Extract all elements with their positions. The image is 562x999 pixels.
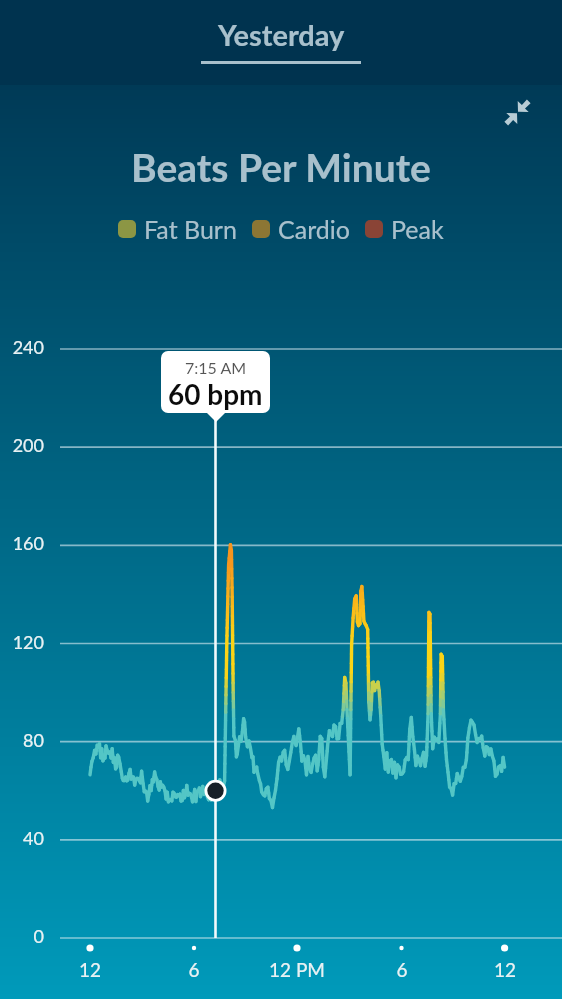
staticText: 6 [144, 958, 244, 981]
staticText: 7:15 AM [185, 358, 247, 377]
button[interactable]: Peak [365, 214, 444, 244]
staticText: 160 [0, 532, 44, 554]
button[interactable]: Collapse [490, 85, 545, 140]
button[interactable]: Fat Burn [118, 214, 237, 244]
button[interactable]: Yesterday [201, 17, 361, 64]
staticText: 80 [0, 729, 44, 751]
staticText: Beats Per Minute [0, 144, 562, 191]
staticText: 240 [0, 336, 44, 358]
staticText: 0 [0, 925, 44, 947]
staticText: Fat Burn [144, 214, 237, 244]
staticText: Cardio [278, 214, 350, 244]
staticText: 6 [352, 958, 452, 981]
staticText: 12 PM [247, 958, 347, 981]
staticText: 40 [0, 827, 44, 849]
staticText: 60 bpm [168, 377, 263, 411]
staticText: Yesterday [218, 17, 345, 52]
button[interactable]: Cardio [252, 214, 350, 244]
staticText: Peak [391, 214, 444, 244]
staticText: 12 [40, 958, 140, 981]
staticText: 120 [0, 631, 44, 653]
staticText: 200 [0, 434, 44, 456]
staticText: 12 [455, 958, 555, 981]
